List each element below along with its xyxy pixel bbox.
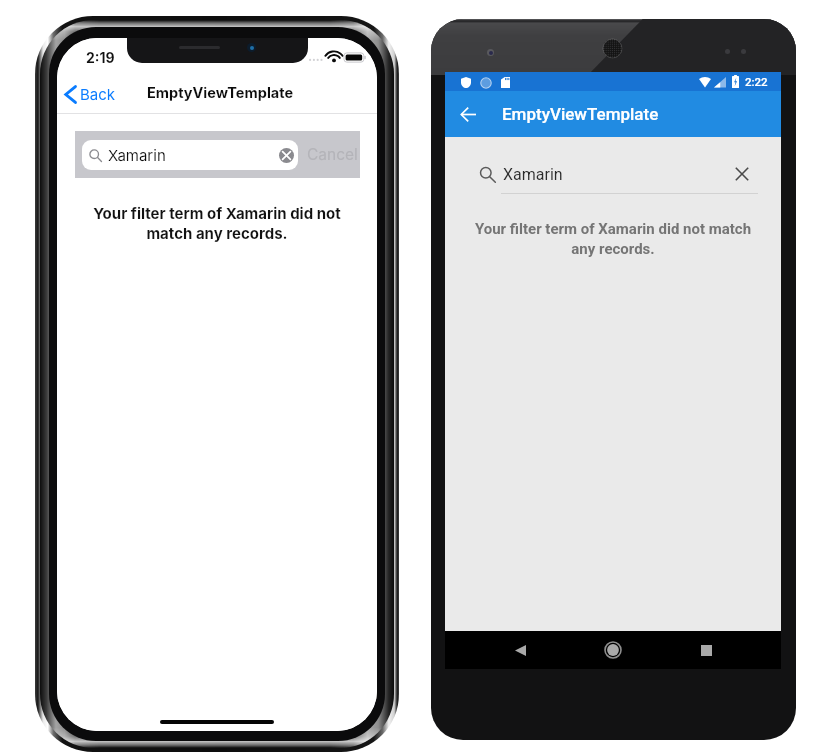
staticText: 2:19 bbox=[86, 49, 115, 66]
button[interactable]: Cancel bbox=[307, 145, 358, 164]
button[interactable]: Xamarin bbox=[479, 161, 752, 187]
staticText: EmptyViewTemplate bbox=[502, 104, 659, 124]
button[interactable]: Clear search bbox=[279, 148, 294, 163]
staticText: Your filter term of Xamarin did not matc… bbox=[90, 204, 344, 243]
staticText: Xamarin bbox=[503, 165, 563, 184]
staticText: EmptyViewTemplate bbox=[147, 84, 294, 102]
button[interactable]: Xamarin bbox=[82, 140, 298, 170]
button[interactable]: Back bbox=[64, 83, 116, 105]
button[interactable]: Home bbox=[598, 635, 628, 665]
staticText: Xamarin bbox=[108, 146, 166, 164]
staticText: Your filter term of Xamarin did not matc… bbox=[467, 220, 759, 257]
staticText: Back bbox=[80, 85, 116, 103]
button[interactable]: Recent apps bbox=[691, 635, 721, 665]
button[interactable]: Back bbox=[505, 635, 535, 665]
button[interactable]: Back bbox=[452, 98, 484, 130]
button[interactable]: Clear search bbox=[732, 164, 752, 184]
staticText: 2:22 bbox=[745, 75, 768, 88]
